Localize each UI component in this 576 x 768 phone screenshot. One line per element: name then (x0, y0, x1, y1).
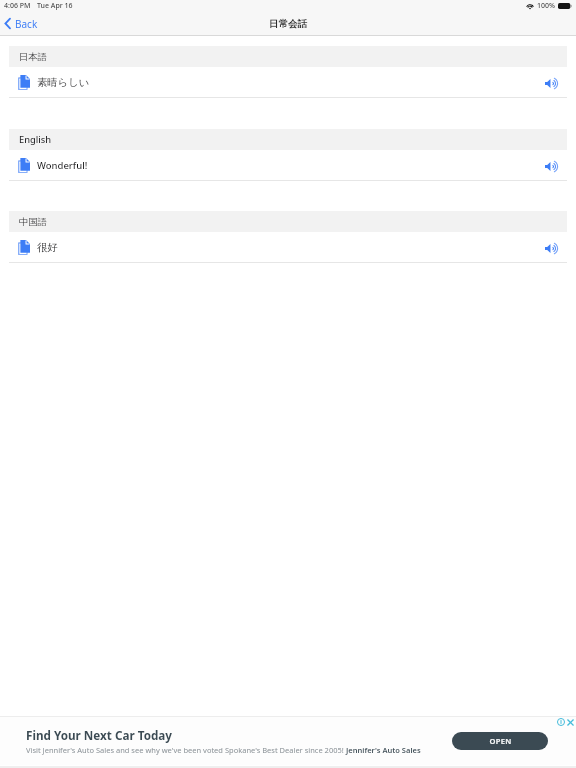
staticText: Find Your Next Car Today (26, 727, 172, 743)
button[interactable]: Play audio (538, 153, 564, 179)
staticText: 素晴らしい (37, 76, 90, 89)
button[interactable]: 素晴らしい (0, 67, 576, 98)
other: Close ad (567, 719, 574, 726)
staticText: 100% (537, 1, 555, 11)
staticText: 4:06 PM (4, 1, 31, 11)
button[interactable]: 很好 (0, 232, 576, 263)
staticText: 很好 (37, 241, 58, 254)
staticText: OPEN (489, 736, 512, 746)
button[interactable]: Play audio (538, 70, 564, 96)
button[interactable]: Wonderful! (0, 150, 576, 181)
staticText: Jennifer's Auto Sales (346, 745, 421, 755)
staticText: Wonderful! (37, 159, 88, 172)
staticText: English (19, 133, 52, 146)
staticText: 日常会話 (269, 18, 307, 30)
button[interactable]: Back (4, 14, 38, 33)
other: Ad info (557, 718, 565, 726)
staticText: Tue Apr 16 (37, 1, 73, 11)
staticText: Visit Jennifer's Auto Sales and see why … (26, 745, 346, 755)
button[interactable]: OPEN (452, 732, 548, 750)
staticText: 中国語 (19, 216, 47, 228)
button[interactable]: Play audio (538, 235, 564, 261)
staticText: 日本語 (19, 51, 47, 63)
staticText: Back (15, 17, 38, 31)
